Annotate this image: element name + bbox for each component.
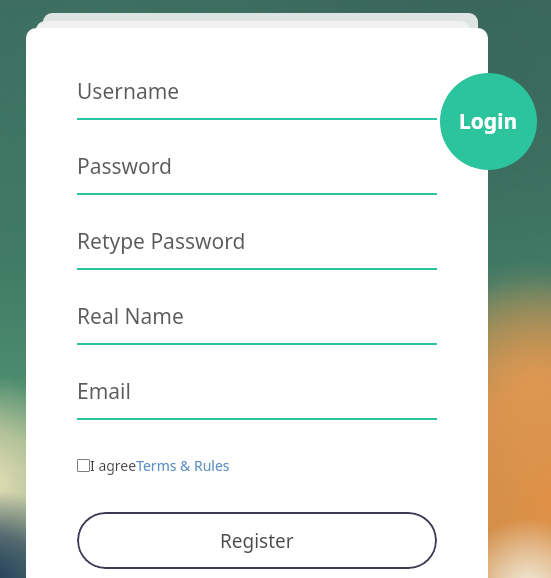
button[interactable]: Real Name — [77, 302, 437, 346]
staticText: Retype Password — [77, 227, 246, 256]
staticText: Register — [220, 528, 294, 554]
staticText: Login — [459, 107, 518, 136]
staticText: Username — [77, 77, 180, 106]
staticText: Email — [77, 377, 131, 406]
button[interactable]: Register — [77, 512, 437, 569]
staticText: I agreeTerms & Rules — [90, 456, 230, 475]
button[interactable]: Email — [77, 377, 437, 421]
button[interactable]: Username — [77, 77, 437, 121]
button[interactable]: Password — [77, 152, 437, 196]
button[interactable]: Login — [440, 73, 537, 170]
staticText: Real Name — [77, 302, 184, 331]
staticText: Password — [77, 152, 172, 181]
button[interactable]: I agreeTerms & Rules — [77, 453, 242, 477]
button[interactable]: Retype Password — [77, 227, 437, 271]
